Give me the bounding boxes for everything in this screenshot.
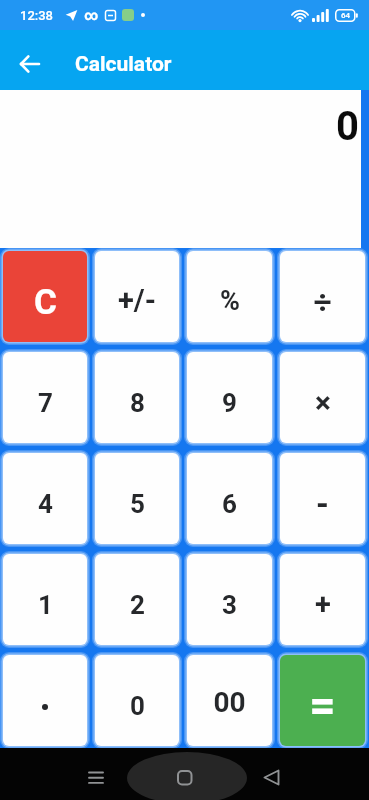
button[interactable]: C [3, 251, 87, 342]
staticText: 00 [213, 686, 246, 719]
button[interactable]: 00 [187, 655, 272, 746]
button[interactable]: = [280, 655, 365, 746]
staticText: 1 [38, 590, 53, 620]
staticText: × [315, 385, 331, 420]
button[interactable] [123, 748, 246, 800]
button[interactable]: 1 [3, 554, 87, 645]
staticText: 2 [130, 590, 145, 620]
button[interactable]: +/- [95, 251, 179, 342]
button[interactable] [10, 44, 50, 84]
staticText: 64 [341, 11, 351, 20]
staticText: - [316, 484, 329, 523]
staticText: +/- [118, 283, 156, 317]
button[interactable] [0, 748, 123, 800]
staticText: 3 [222, 590, 237, 620]
button[interactable] [3, 655, 87, 746]
staticText: 9 [222, 388, 237, 418]
staticText: + [315, 587, 331, 621]
staticText: 0 [336, 103, 359, 150]
button[interactable]: × [280, 352, 365, 443]
button[interactable]: 2 [95, 554, 179, 645]
button[interactable]: + [280, 554, 365, 645]
button[interactable]: 8 [95, 352, 179, 443]
staticText: 5 [130, 489, 145, 519]
button[interactable]: 3 [187, 554, 272, 645]
button[interactable]: 0 [95, 655, 179, 746]
staticText: 6 [222, 489, 237, 519]
staticText: 7 [38, 388, 53, 418]
button[interactable]: 7 [3, 352, 87, 443]
staticText: = [309, 678, 336, 732]
staticText: ÷ [313, 283, 332, 321]
staticText: 0 [130, 691, 145, 721]
staticText: ∞ [84, 7, 99, 23]
staticText: 8 [130, 388, 145, 418]
button[interactable]: ÷ [280, 251, 365, 342]
staticText: C [34, 282, 57, 323]
staticText: 4 [38, 489, 53, 519]
button[interactable]: 4 [3, 453, 87, 544]
button[interactable]: 9 [187, 352, 272, 443]
button[interactable]: 5 [95, 453, 179, 544]
button[interactable]: - [280, 453, 365, 544]
staticText: % [220, 285, 240, 317]
staticText: 12:38 [20, 8, 54, 23]
staticText: Calculator [75, 52, 172, 77]
button[interactable]: 6 [187, 453, 272, 544]
button[interactable] [246, 748, 369, 800]
button[interactable]: % [187, 251, 272, 342]
